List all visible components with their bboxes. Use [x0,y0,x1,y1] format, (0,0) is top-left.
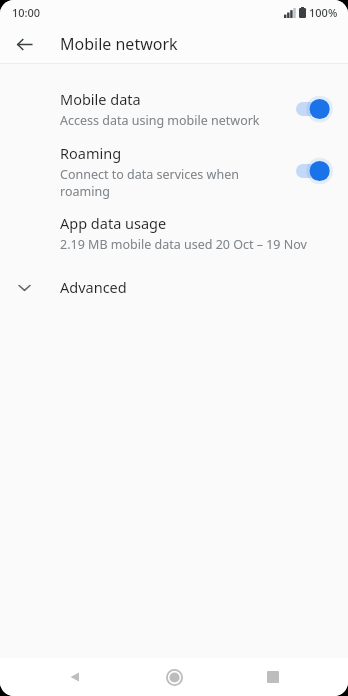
button[interactable]: Recent apps [249,658,297,696]
button[interactable]: Toggle [296,97,332,121]
button[interactable]: Toggle [296,159,332,183]
staticText: Access data using mobile network [60,112,260,129]
staticText: 100% [309,5,338,20]
staticText: 10:00 [12,5,41,20]
button[interactable]: Advanced [0,264,348,310]
staticText: Connect to data services when roaming [60,166,288,200]
staticText: Advanced [60,277,127,297]
button[interactable]: Mobile data [0,78,348,140]
button[interactable]: Back [51,658,99,696]
staticText: 2.19 MB mobile data used 20 Oct – 19 Nov [60,236,307,253]
staticText: App data usage [60,213,167,233]
button[interactable]: Roaming [0,140,348,202]
staticText: Mobile data [60,89,141,109]
staticText: Roaming [60,143,122,163]
button[interactable]: Home [150,658,198,696]
staticText: Mobile network [60,33,178,55]
button[interactable]: App data usage [0,202,348,264]
button[interactable]: Back [10,30,38,58]
